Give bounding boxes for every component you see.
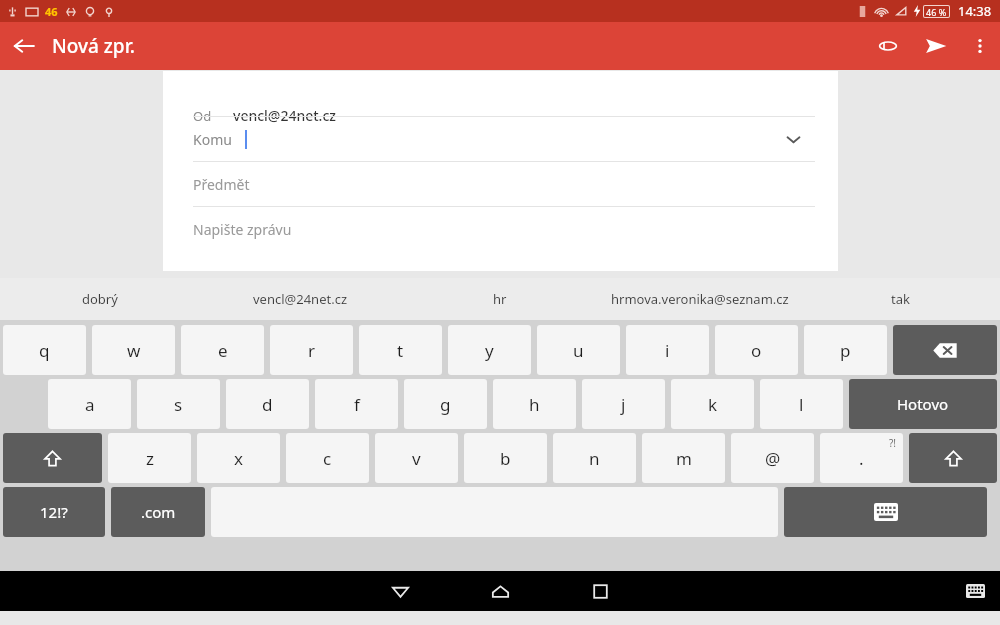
button[interactable]: Napište zprávu <box>163 207 838 271</box>
button[interactable]: Attach <box>864 22 912 70</box>
staticText: hrmova.veronika@seznam.cz <box>611 290 789 308</box>
button[interactable]: dobrý <box>0 278 200 320</box>
button[interactable]: c <box>286 433 369 483</box>
button[interactable]: s <box>137 379 220 429</box>
staticText: 46 <box>45 4 58 19</box>
button[interactable]: Hide keyboard <box>958 574 992 608</box>
staticText: hr <box>493 290 507 308</box>
button[interactable]: . <box>820 433 903 483</box>
button[interactable]: x <box>197 433 280 483</box>
staticText: y <box>485 339 494 362</box>
button[interactable]: i <box>626 325 709 375</box>
button[interactable]: Backspace <box>893 325 997 375</box>
staticText: t <box>397 339 404 362</box>
staticText: 12!? <box>40 502 68 522</box>
staticText: e <box>218 339 228 362</box>
button[interactable]: u <box>537 325 620 375</box>
button[interactable]: q <box>3 325 86 375</box>
staticText: 46 % <box>926 6 947 17</box>
button[interactable]: t <box>359 325 442 375</box>
staticText: vencl@24net.cz <box>253 290 348 308</box>
button[interactable]: b <box>464 433 547 483</box>
staticText: . <box>859 447 864 470</box>
button[interactable]: Home <box>480 571 520 611</box>
button[interactable]: hrmova.veronika@seznam.cz <box>600 278 800 320</box>
staticText: g <box>440 393 451 416</box>
staticText: c <box>323 447 332 470</box>
button[interactable]: Recent apps <box>580 571 620 611</box>
staticText: Předmět <box>193 175 250 194</box>
button[interactable]: vencl@24net.cz <box>200 278 400 320</box>
button[interactable]: j <box>582 379 665 429</box>
button[interactable]: Back <box>380 571 420 611</box>
button[interactable]: f <box>315 379 398 429</box>
staticText: Od <box>193 107 212 125</box>
button[interactable]: Switch keyboard <box>784 487 987 537</box>
staticText: f <box>354 393 360 416</box>
staticText: u <box>573 339 584 362</box>
button[interactable]: k <box>671 379 754 429</box>
staticText: k <box>708 393 718 416</box>
button[interactable]: a <box>48 379 131 429</box>
button[interactable]: w <box>92 325 175 375</box>
button[interactable]: z <box>108 433 191 483</box>
staticText: o <box>751 339 762 362</box>
staticText: Nová zpr. <box>52 33 135 59</box>
staticText: 14:38 <box>958 2 992 20</box>
staticText: l <box>799 393 804 416</box>
button[interactable]: d <box>226 379 309 429</box>
staticText: z <box>146 447 154 470</box>
button[interactable]: m <box>642 433 725 483</box>
staticText: Napište zprávu <box>193 220 292 239</box>
button[interactable]: 12!? <box>3 487 105 537</box>
staticText: tak <box>891 290 910 308</box>
staticText: h <box>529 393 540 416</box>
staticText: w <box>127 339 141 362</box>
staticText: dobrý <box>82 290 118 308</box>
staticText: m <box>676 447 692 470</box>
button[interactable]: Hotovo <box>849 379 997 429</box>
button[interactable]: Back <box>0 22 48 70</box>
button[interactable]: Send <box>912 22 960 70</box>
staticText: i <box>665 339 670 362</box>
staticText: q <box>39 339 50 362</box>
button[interactable]: l <box>760 379 843 429</box>
button[interactable]: y <box>448 325 531 375</box>
staticText: .com <box>141 502 176 522</box>
button[interactable]: Předmět <box>163 162 838 206</box>
staticText: vencl@24net.cz <box>233 106 336 125</box>
button[interactable]: v <box>375 433 458 483</box>
staticText: ?! <box>889 436 897 450</box>
staticText: j <box>621 393 626 416</box>
button[interactable]: tak <box>800 278 1000 320</box>
button[interactable]: r <box>270 325 353 375</box>
button[interactable]: Od <box>163 93 838 137</box>
staticText: b <box>500 447 511 470</box>
button[interactable]: Shift <box>3 433 102 483</box>
button[interactable]: hr <box>400 278 600 320</box>
button[interactable]: Expand recipients <box>778 124 808 154</box>
staticText: d <box>262 393 273 416</box>
button[interactable]: p <box>804 325 887 375</box>
button[interactable]: Shift <box>909 433 997 483</box>
button[interactable]: g <box>404 379 487 429</box>
staticText: v <box>412 447 421 470</box>
staticText: r <box>308 339 316 362</box>
button[interactable]: .com <box>111 487 205 537</box>
staticText: s <box>174 393 183 416</box>
staticText: @ <box>765 447 781 470</box>
button[interactable]: Komu <box>163 117 838 161</box>
staticText: n <box>589 447 600 470</box>
button[interactable]: More options <box>960 26 1000 66</box>
button[interactable]: e <box>181 325 264 375</box>
staticText: x <box>234 447 243 470</box>
staticText: Hotovo <box>897 394 949 414</box>
button[interactable]: n <box>553 433 636 483</box>
staticText: Komu <box>193 130 232 149</box>
button[interactable]: o <box>715 325 798 375</box>
button[interactable]: @ <box>731 433 814 483</box>
staticText: p <box>840 339 851 362</box>
staticText: a <box>85 393 95 416</box>
button[interactable]: h <box>493 379 576 429</box>
